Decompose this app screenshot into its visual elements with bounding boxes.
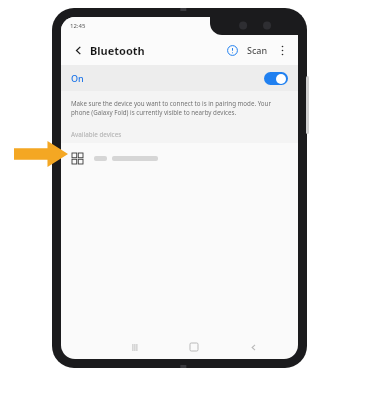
button[interactable]: Back: [70, 42, 86, 58]
staticText: On: [71, 72, 84, 84]
staticText: 12:45: [70, 22, 86, 30]
button[interactable]: More options: [275, 43, 289, 57]
button[interactable]: Recents: [127, 339, 143, 355]
staticText: Bluetooth: [90, 43, 145, 58]
button[interactable]: [61, 143, 298, 173]
staticText: Scan: [247, 44, 268, 56]
button[interactable]: Help: [224, 42, 240, 58]
button[interactable]: Home: [186, 339, 202, 355]
staticText: 100%: [267, 22, 283, 30]
button[interactable]: Back: [245, 339, 261, 355]
staticText: Available devices: [71, 130, 122, 138]
button[interactable]: Scan: [245, 42, 270, 58]
staticText: Make sure the device you want to connect…: [71, 99, 288, 117]
button[interactable]: On: [61, 65, 298, 91]
